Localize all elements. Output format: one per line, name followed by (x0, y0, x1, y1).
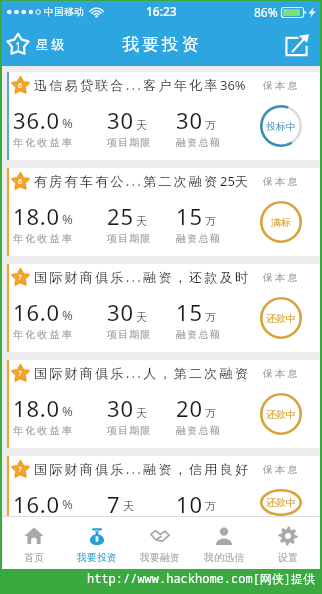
staticText: % (62, 402, 73, 420)
button[interactable]: 7 (7, 264, 320, 352)
staticText: 国际财商俱乐...融资，信用良好 (34, 460, 251, 478)
staticText: 16:23 (146, 3, 177, 19)
staticText: 18.0 (13, 393, 60, 423)
staticText: 1 (15, 38, 22, 53)
staticText: 30 (107, 297, 134, 327)
button[interactable]: 我要投资 (65, 517, 128, 569)
staticText: % (62, 114, 73, 132)
staticText: 还款中 (266, 312, 296, 325)
staticText: 16.0 (13, 297, 60, 327)
staticText: 保本息 (263, 271, 300, 284)
staticText: 年化收益率 (13, 328, 75, 341)
staticText: 天 (136, 214, 147, 228)
staticText: 项目期限 (107, 232, 152, 245)
staticText: 36.0 (13, 105, 60, 135)
staticText: 30 (107, 105, 134, 135)
staticText: 30 (107, 393, 134, 423)
staticText: 7 (18, 369, 23, 379)
staticText: 项目期限 (107, 136, 152, 149)
staticText: 10 (176, 489, 203, 516)
staticText: 融资总额 (176, 232, 221, 245)
staticText: 15 (176, 297, 203, 327)
staticText: % (62, 306, 73, 324)
staticText: 7 (18, 273, 23, 283)
staticText: 万 (205, 406, 216, 420)
button[interactable]: 7 (7, 456, 320, 516)
staticText: 万 (205, 499, 216, 513)
staticText: 16.0 (13, 489, 60, 516)
staticText: 18.0 (13, 201, 60, 231)
staticText: 25天 (220, 172, 248, 190)
staticText: 还款中 (266, 408, 296, 421)
staticText: 天 (123, 499, 134, 513)
staticText: 7 (107, 489, 121, 516)
button[interactable]: 设置 (256, 517, 320, 569)
staticText: 年化收益率 (13, 232, 75, 245)
staticText: 天 (136, 310, 147, 324)
staticText: 满标 (271, 216, 291, 229)
staticText: 保本息 (263, 367, 300, 380)
staticText: 保本息 (263, 463, 300, 476)
button[interactable]: 1 (2, 26, 76, 62)
staticText: 迅信易贷联合...客户年化率 (34, 76, 220, 94)
staticText: % (62, 210, 73, 228)
staticText: 我的迅信 (204, 551, 244, 564)
staticText: 我要投资 (122, 34, 202, 55)
staticText: 国际财商俱乐...融资，还款及时 (34, 268, 251, 286)
staticText: 还款中 (266, 496, 296, 509)
staticText: 融资总额 (176, 328, 221, 341)
staticText: 首页 (24, 551, 44, 564)
button[interactable]: 我要融资 (128, 517, 192, 569)
staticText: 36% (220, 76, 246, 94)
button[interactable]: 7 (7, 360, 320, 448)
staticText: 保本息 (263, 175, 300, 188)
button[interactable]: 我的迅信 (192, 517, 256, 569)
staticText: http://www.hackhome.com[网侠]提供 (87, 570, 316, 586)
staticText: 86% (254, 4, 278, 20)
staticText: 国际财商俱乐...人，第二次融资 (34, 364, 251, 382)
staticText: 项目期限 (107, 424, 152, 437)
staticText: 30 (176, 105, 203, 135)
staticText: 6 (18, 177, 23, 187)
staticText: 万 (205, 214, 216, 228)
staticText: 25 (107, 201, 134, 231)
staticText: 20 (176, 393, 203, 423)
staticText: 万 (205, 310, 216, 324)
button[interactable]: 首页 (2, 517, 65, 569)
button[interactable]: 6 (7, 168, 320, 256)
staticText: 项目期限 (107, 328, 152, 341)
staticText: 天 (136, 118, 147, 132)
staticText: % (62, 495, 73, 513)
staticText: 中国移动 (44, 5, 84, 18)
staticText: 融资总额 (176, 136, 221, 149)
staticText: 投标中 (266, 120, 296, 133)
staticText: 我要融资 (140, 551, 180, 564)
staticText: 年化收益率 (13, 424, 75, 437)
staticText: 星级 (36, 36, 68, 52)
staticText: 保本息 (263, 79, 300, 92)
staticText: 有房有车有公...第二次融资 (34, 172, 220, 190)
staticText: 融资总额 (176, 424, 221, 437)
staticText: 7 (18, 465, 23, 475)
staticText: 年化收益率 (13, 136, 75, 149)
staticText: 万 (205, 118, 216, 132)
staticText: 6 (18, 81, 23, 91)
staticText: 15 (176, 201, 203, 231)
staticText: 设置 (278, 551, 298, 564)
button[interactable]: 6 (7, 72, 320, 160)
staticText: 我要投资 (77, 551, 117, 564)
button[interactable]: Share (275, 23, 320, 66)
staticText: 天 (136, 406, 147, 420)
